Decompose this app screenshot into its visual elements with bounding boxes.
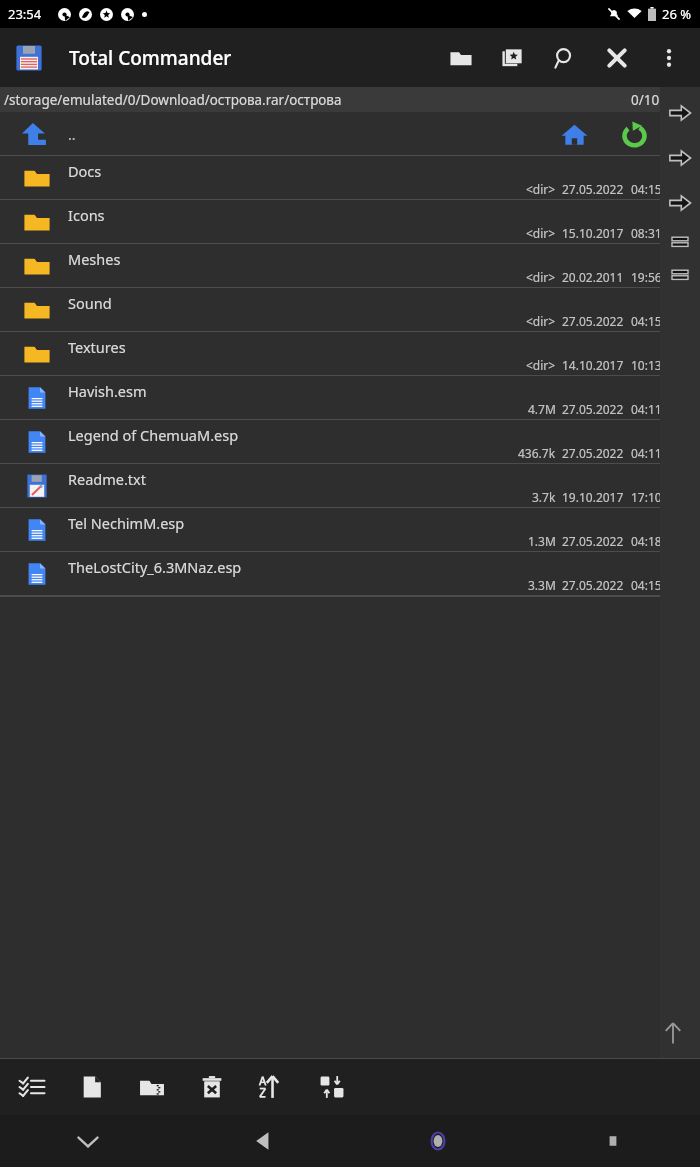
staticText: 14.10.2017: [562, 357, 624, 373]
button[interactable]: Copy to other panel: [660, 180, 700, 225]
button[interactable]: Compare: [660, 258, 700, 291]
staticText: Readme.txt: [68, 469, 147, 489]
staticText: 04:11: [631, 445, 662, 461]
staticText: 27.05.2022: [562, 401, 624, 417]
button[interactable]: Copy to other panel: [660, 135, 700, 180]
staticText: 27.05.2022: [562, 445, 624, 461]
staticText: 27.05.2022: [562, 181, 624, 197]
button[interactable]: Compare: [660, 225, 700, 258]
staticText: 08:31: [631, 225, 662, 241]
staticText: 19:56: [631, 269, 662, 285]
staticText: Havish.esm: [68, 381, 147, 401]
button[interactable]: Textures: [0, 332, 700, 376]
staticText: Legend of ChemuaM.esp: [68, 425, 239, 445]
button[interactable]: Home: [556, 116, 592, 152]
button[interactable]: Icons: [0, 200, 700, 244]
button[interactable]: Scroll to top: [652, 1012, 694, 1054]
button[interactable]: Open folder: [444, 41, 478, 75]
button[interactable]: Bookmarks: [496, 41, 530, 75]
button[interactable]: TheLostCity_6.3MNaz.esp: [0, 552, 700, 596]
staticText: 0/10: [631, 91, 660, 109]
staticText: 20.02.2011: [562, 269, 624, 285]
button[interactable]: Home: [350, 1115, 525, 1167]
button[interactable]: Havish.esm: [0, 376, 700, 420]
button[interactable]: Refresh: [616, 116, 652, 152]
staticText: 27.05.2022: [562, 533, 624, 549]
staticText: 27.05.2022: [562, 313, 624, 329]
button[interactable]: Readme.txt: [0, 464, 700, 508]
staticText: Total Commander: [69, 45, 232, 71]
staticText: /storage/emulated/0/Download/острова.rar…: [4, 91, 342, 109]
staticText: 27.05.2022: [562, 577, 624, 593]
button[interactable]: Hide keyboard: [0, 1115, 175, 1167]
staticText: <dir>: [526, 313, 556, 329]
button[interactable]: Sound: [0, 288, 700, 332]
staticText: 04:15: [631, 181, 662, 197]
staticText: 436.7k: [518, 445, 556, 461]
staticText: 26 %: [662, 5, 692, 23]
staticText: 04:18: [631, 533, 662, 549]
button[interactable]: Close: [600, 41, 634, 75]
button[interactable]: Back: [175, 1115, 350, 1167]
button[interactable]: Legend of ChemuaM.esp: [0, 420, 700, 464]
button[interactable]: Delete: [194, 1069, 230, 1105]
staticText: Icons: [68, 205, 105, 225]
staticText: 3.7k: [532, 489, 556, 505]
button[interactable]: Docs: [0, 156, 700, 200]
staticText: Sound: [68, 293, 112, 313]
staticText: 19.10.2017: [562, 489, 624, 505]
button[interactable]: Recents: [525, 1115, 700, 1167]
button[interactable]: Zip: [134, 1069, 170, 1105]
staticText: 4.7M: [528, 401, 556, 417]
staticText: <dir>: [526, 269, 556, 285]
staticText: 3.3M: [528, 577, 556, 593]
staticText: 10:13: [631, 357, 662, 373]
button[interactable]: ..: [0, 112, 700, 156]
staticText: ..: [68, 125, 76, 144]
staticText: Textures: [68, 337, 126, 357]
button[interactable]: Tel NechimM.esp: [0, 508, 700, 552]
button[interactable]: More options: [652, 41, 686, 75]
staticText: Tel NechimM.esp: [68, 513, 185, 533]
staticText: 15.10.2017: [562, 225, 624, 241]
staticText: 04:11: [631, 401, 662, 417]
staticText: 17:10: [631, 489, 662, 505]
button[interactable]: New file: [74, 1069, 110, 1105]
button[interactable]: Search: [548, 41, 582, 75]
staticText: TheLostCity_6.3MNaz.esp: [68, 557, 242, 577]
staticText: 23:54: [8, 5, 42, 23]
staticText: <dir>: [526, 225, 556, 241]
staticText: 1.3M: [528, 533, 556, 549]
staticText: Docs: [68, 161, 102, 181]
staticText: 04:15: [631, 577, 662, 593]
button[interactable]: Select: [14, 1069, 50, 1105]
button[interactable]: Exchange: [314, 1069, 350, 1105]
staticText: <dir>: [526, 181, 556, 197]
staticText: 04:15: [631, 313, 662, 329]
staticText: Meshes: [68, 249, 121, 269]
button[interactable]: Meshes: [0, 244, 700, 288]
staticText: <dir>: [526, 357, 556, 373]
button[interactable]: Sort: [254, 1069, 290, 1105]
button[interactable]: Copy to other panel: [660, 90, 700, 135]
